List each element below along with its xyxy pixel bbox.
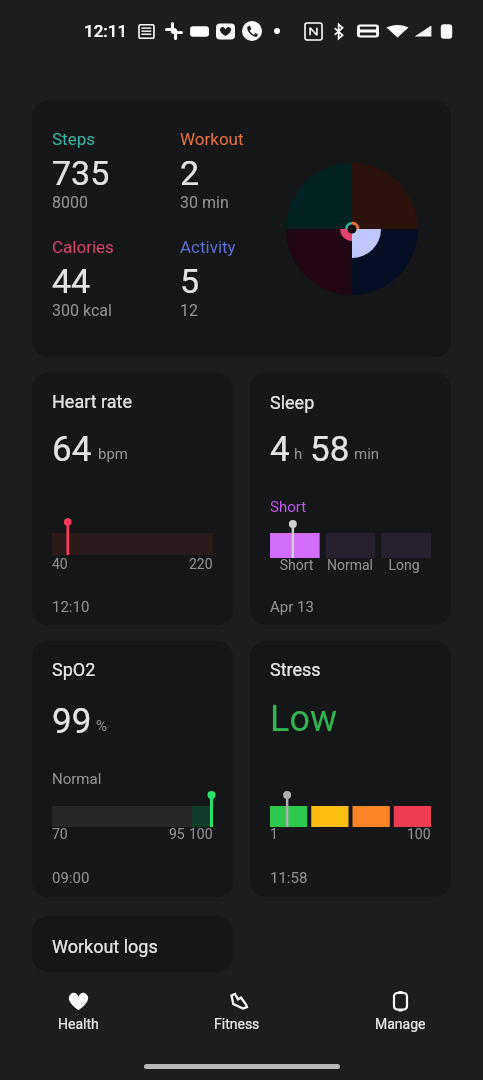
staticText: Short xyxy=(270,557,323,573)
staticText: 5 xyxy=(180,261,200,301)
staticText: 40 xyxy=(52,556,68,572)
staticText: 70 xyxy=(52,826,68,842)
staticText: 2 xyxy=(180,153,200,193)
staticText: Apr 13 xyxy=(270,598,314,616)
staticText: 1 xyxy=(270,826,278,842)
staticText: h xyxy=(294,445,303,463)
staticText: Stress xyxy=(270,659,321,680)
button[interactable]: Manage xyxy=(349,981,452,1040)
button[interactable]: Heart rate xyxy=(32,373,233,625)
staticText: Low xyxy=(270,698,337,740)
staticText: Heart rate xyxy=(52,391,133,412)
staticText: 300 kcal xyxy=(52,301,112,320)
button[interactable]: Stress xyxy=(250,641,451,897)
staticText: 58 xyxy=(310,429,350,470)
button[interactable]: Workout logs xyxy=(32,916,233,972)
staticText: 30 min xyxy=(180,193,229,212)
staticText: 44 xyxy=(52,261,91,301)
other: Manage xyxy=(388,989,413,1014)
staticText: 8000 xyxy=(52,193,88,212)
staticText: Normal xyxy=(323,557,377,573)
staticText: SpO2 xyxy=(52,659,96,680)
staticText: Activity xyxy=(180,237,236,257)
button[interactable]: SpO2 xyxy=(32,641,233,897)
button[interactable]: Fitness xyxy=(188,981,286,1040)
staticText: bpm xyxy=(98,445,128,463)
staticText: Normal xyxy=(52,770,102,788)
staticText: 12 xyxy=(180,301,198,320)
staticText: 09:00 xyxy=(52,869,90,887)
other: Fitness xyxy=(225,989,250,1014)
staticText: % xyxy=(96,717,107,735)
button[interactable]: Sleep xyxy=(250,373,451,625)
staticText: 11:58 xyxy=(270,869,308,887)
staticText: min xyxy=(354,445,380,463)
staticText: 100 xyxy=(189,826,213,842)
staticText: Health xyxy=(58,1016,99,1032)
staticText: Workout logs xyxy=(52,936,158,957)
staticText: Fitness xyxy=(214,1016,260,1032)
staticText: 12:11 xyxy=(84,21,128,41)
staticText: 4 xyxy=(270,429,290,470)
staticText: Workout xyxy=(180,129,244,149)
staticText: Short xyxy=(270,498,307,516)
staticText: 735 xyxy=(52,153,110,193)
button[interactable]: Steps xyxy=(32,101,451,357)
staticText: Calories xyxy=(52,237,114,257)
staticText: Steps xyxy=(52,129,95,149)
other: Health xyxy=(66,989,91,1014)
staticText: 220 xyxy=(189,556,213,572)
staticText: 64 xyxy=(52,429,92,470)
staticText: Long xyxy=(377,557,431,573)
staticText: 12:10 xyxy=(52,598,90,616)
staticText: 99 xyxy=(52,701,92,742)
button[interactable]: Health xyxy=(32,981,125,1040)
staticText: Sleep xyxy=(270,392,315,413)
staticText: 100 xyxy=(407,826,431,842)
staticText: Manage xyxy=(375,1016,426,1032)
staticText: 95 xyxy=(169,826,185,842)
